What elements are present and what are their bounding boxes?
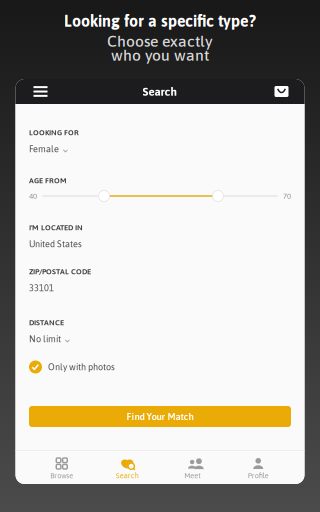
staticText: LOOKING FOR bbox=[29, 128, 79, 137]
staticText: ZIP/POSTAL CODE bbox=[29, 267, 91, 276]
staticText: 40 bbox=[29, 192, 37, 200]
staticText: Find Your Match bbox=[126, 411, 193, 422]
button[interactable]: Search bbox=[94, 451, 160, 484]
staticText: Female bbox=[29, 144, 59, 154]
staticText: I'M LOCATED IN bbox=[29, 223, 83, 232]
staticText: who you want bbox=[111, 46, 209, 64]
button[interactable]: Only with photos bbox=[29, 360, 291, 374]
button[interactable]: I'M LOCATED IN bbox=[29, 223, 291, 250]
staticText: Only with photos bbox=[48, 362, 115, 372]
staticText: Profile bbox=[248, 471, 269, 480]
staticText: Browse bbox=[50, 471, 73, 480]
staticText: DISTANCE bbox=[29, 318, 64, 327]
staticText: Search bbox=[116, 471, 139, 480]
button[interactable]: ZIP/POSTAL CODE bbox=[29, 267, 291, 294]
staticText: No limit bbox=[29, 334, 61, 344]
button[interactable]: Browse bbox=[29, 451, 94, 484]
button[interactable]: LOOKING FOR bbox=[29, 128, 291, 155]
button[interactable]: Meet bbox=[160, 451, 225, 484]
staticText: Meet bbox=[184, 471, 201, 480]
staticText: 33101 bbox=[29, 283, 54, 293]
button[interactable]: Find Your Match bbox=[29, 406, 291, 427]
staticText: United States bbox=[29, 239, 82, 249]
button[interactable]: DISTANCE bbox=[29, 318, 291, 345]
staticText: AGE FROM bbox=[29, 176, 67, 185]
staticText: Choose exactly bbox=[107, 32, 213, 50]
staticText: 70 bbox=[283, 192, 291, 200]
button[interactable]: Messages bbox=[268, 79, 294, 104]
button[interactable]: Menu bbox=[27, 79, 53, 104]
staticText: Looking for a specific type? bbox=[64, 12, 256, 30]
staticText: Search bbox=[142, 85, 177, 98]
button[interactable]: Profile bbox=[225, 451, 291, 484]
